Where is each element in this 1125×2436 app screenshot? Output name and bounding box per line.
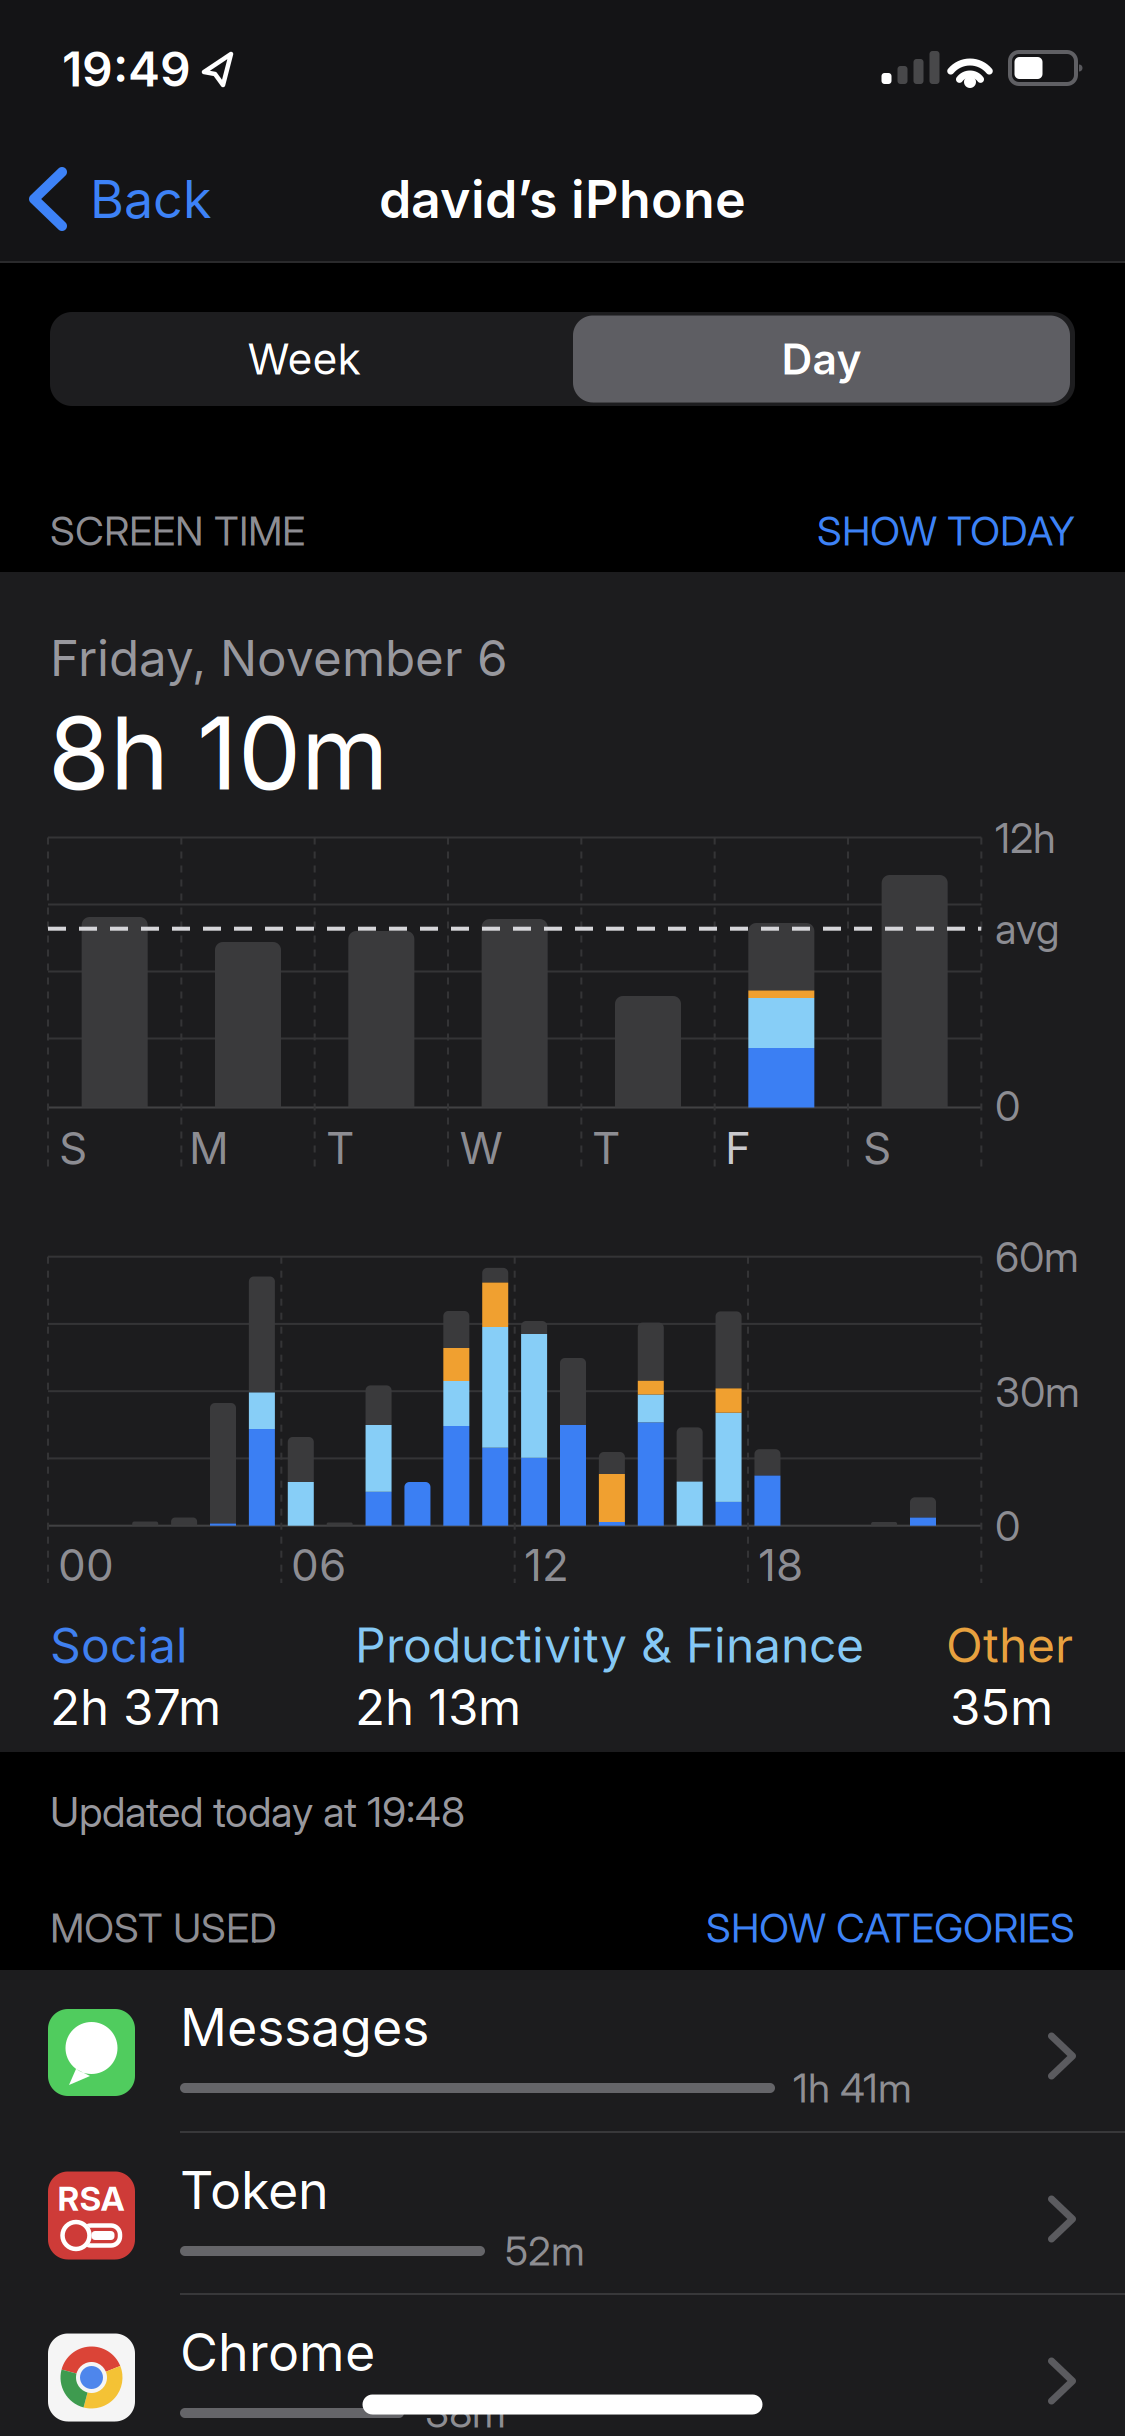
button[interactable]: Messages [0, 1970, 1125, 2132]
staticText: Other [946, 1617, 1073, 1673]
staticText: 12h [995, 814, 1056, 862]
staticText: MOST USED [50, 1904, 277, 1952]
staticText: M [189, 1122, 229, 1174]
staticText: 2h 37m [50, 1678, 221, 1736]
staticText: W [459, 1122, 502, 1174]
staticText: Back [90, 168, 212, 230]
staticText: 12 [524, 1539, 569, 1591]
staticText: 1h 41m [793, 2064, 912, 2112]
button[interactable]: SHOW CATEGORIES [706, 1904, 1075, 1952]
staticText: Token [180, 2159, 329, 2221]
button[interactable]: Chrome [0, 2295, 1125, 2436]
staticText: F [725, 1122, 751, 1174]
staticText: david’s iPhone [379, 168, 746, 230]
staticText: Friday, November 6 [50, 629, 508, 687]
staticText: Day [781, 334, 861, 384]
staticText: S [59, 1122, 87, 1174]
staticText: S [863, 1122, 891, 1174]
staticText: 8h 10m [48, 694, 389, 812]
button[interactable]: Day [573, 315, 1070, 402]
staticText: T [326, 1122, 354, 1174]
staticText: Updated today at 19:48 [50, 1788, 465, 1836]
staticText: 30m [995, 1368, 1080, 1416]
staticText: 19:49 [62, 41, 191, 97]
staticText: 2h 13m [355, 1678, 521, 1736]
staticText: 0 [995, 1082, 1020, 1130]
button[interactable]: Back [28, 154, 258, 244]
staticText: SHOW TODAY [817, 507, 1075, 555]
button[interactable]: SHOW TODAY [817, 507, 1075, 555]
staticText: SCREEN TIME [50, 507, 305, 555]
staticText: 60m [995, 1233, 1079, 1281]
staticText: 06 [291, 1539, 346, 1591]
staticText: 18 [758, 1539, 803, 1591]
button[interactable]: Week [48, 312, 560, 406]
staticText: Week [247, 334, 360, 384]
staticText: Messages [180, 1996, 429, 2058]
staticText: 38m [425, 2389, 506, 2436]
staticText: 52m [505, 2227, 585, 2275]
staticText: Productivity & Finance [355, 1617, 864, 1673]
staticText: avg [995, 905, 1059, 953]
staticText: 0 [995, 1502, 1020, 1550]
staticText: RSA [57, 2179, 124, 2218]
staticText: 35m [950, 1678, 1053, 1736]
staticText: SHOW CATEGORIES [706, 1904, 1075, 1952]
staticText: T [592, 1122, 620, 1174]
button[interactable]: RSA [0, 2133, 1125, 2294]
staticText: Chrome [180, 2321, 375, 2383]
staticText: 00 [58, 1539, 114, 1591]
staticText: Social [50, 1617, 188, 1673]
